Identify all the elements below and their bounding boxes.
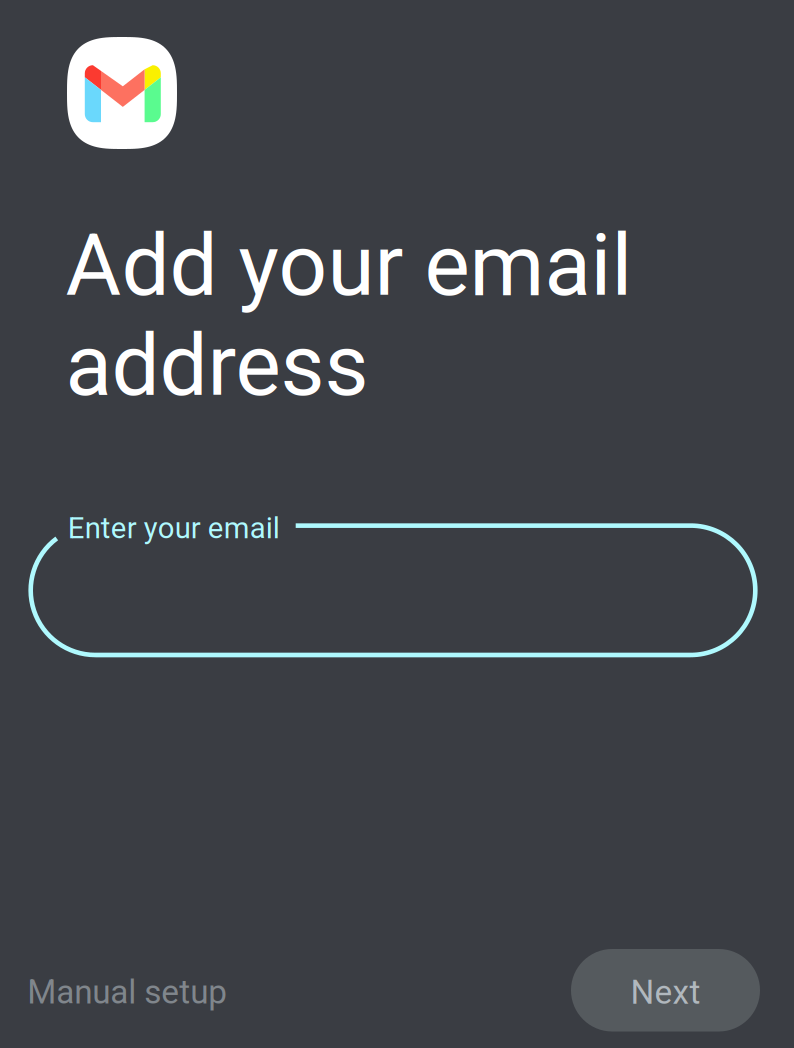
button[interactable]: Manual setup [27, 972, 227, 1012]
button[interactable]: Next [571, 949, 760, 1031]
staticText: Next [630, 973, 700, 1012]
staticText: Manual setup [27, 972, 227, 1012]
staticText: Enter your email [68, 511, 280, 545]
staticText: Add your email address [65, 215, 632, 415]
